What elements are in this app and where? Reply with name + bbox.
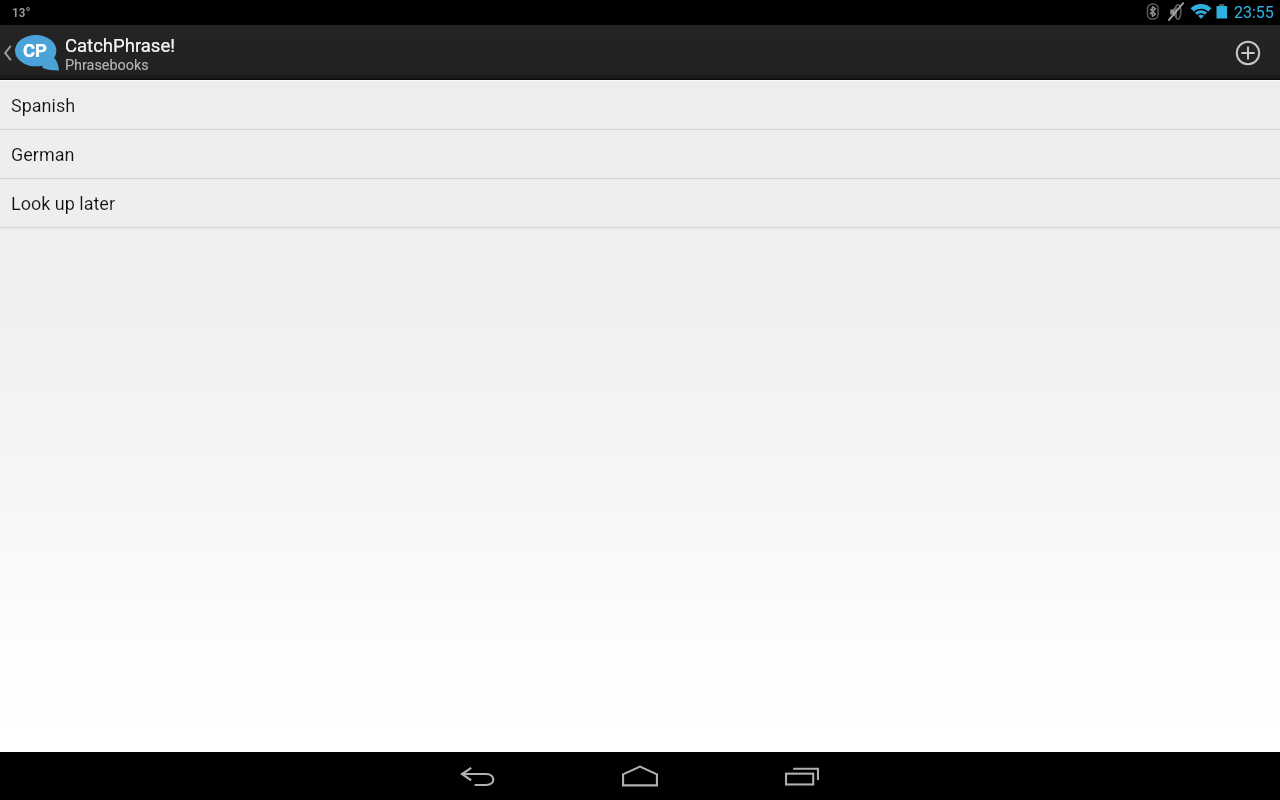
button[interactable]: Home (586, 752, 694, 800)
staticText: 13° (12, 4, 31, 20)
button[interactable]: Navigate up (0, 25, 179, 80)
staticText: Look up later (11, 193, 116, 214)
button[interactable]: Back (424, 752, 532, 800)
staticText: German (11, 144, 75, 165)
button[interactable]: Add phrasebook (1216, 25, 1280, 80)
staticText: 23:55 (1234, 3, 1274, 22)
staticText: Spanish (11, 95, 76, 116)
button[interactable]: German (0, 130, 1280, 179)
button[interactable]: Spanish (0, 81, 1280, 130)
button[interactable]: Look up later (0, 179, 1280, 228)
staticText: CP (23, 40, 48, 62)
button[interactable]: Recent apps (748, 752, 856, 800)
staticText: CatchPhrase! (65, 35, 175, 57)
staticText: Phrasebooks (65, 57, 149, 74)
